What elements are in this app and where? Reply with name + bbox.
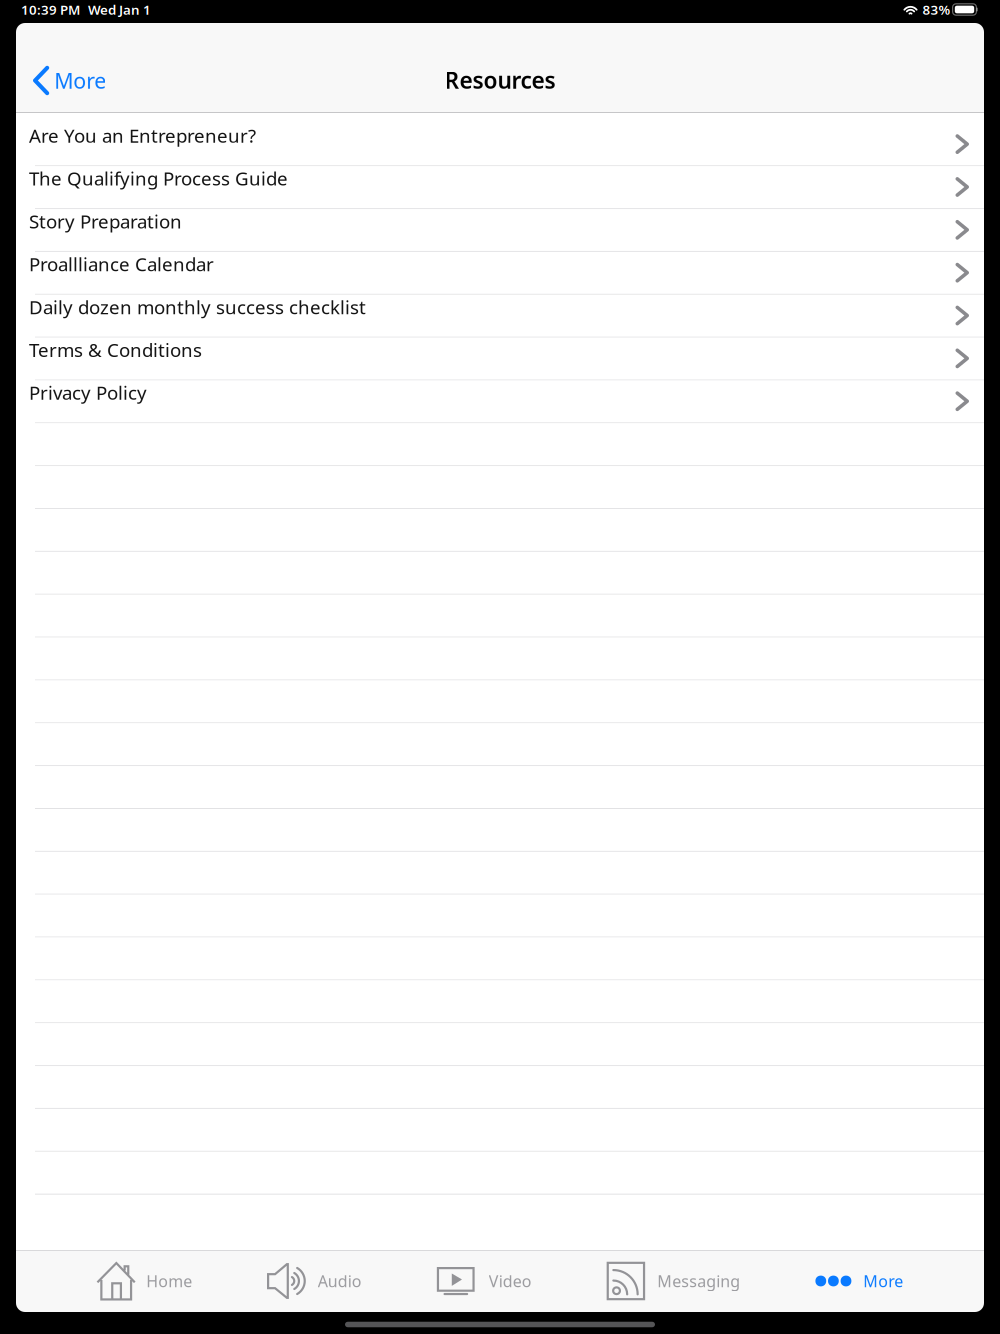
button[interactable]: Messaging	[607, 1251, 740, 1311]
staticText: More	[863, 1270, 903, 1292]
staticText: Home	[146, 1270, 192, 1292]
staticText: Privacy Policy	[29, 380, 147, 405]
staticText: Terms & Conditions	[29, 337, 202, 362]
staticText: More	[54, 66, 106, 95]
staticText: Video	[489, 1270, 532, 1292]
staticText: Proallliance Calendar	[29, 252, 214, 276]
staticText: Audio	[318, 1270, 362, 1292]
button[interactable]: The Qualifying Process Guide	[16, 166, 984, 209]
button[interactable]: Home	[97, 1251, 192, 1311]
button[interactable]: Story Preparation	[16, 209, 984, 252]
button[interactable]: Terms & Conditions	[16, 338, 984, 380]
button[interactable]: Daily dozen monthly success checklist	[16, 295, 984, 338]
staticText: Are You an Entrepreneur?	[29, 123, 256, 148]
staticText: The Qualifying Process Guide	[29, 166, 288, 191]
staticText: 83%	[923, 1, 951, 18]
button[interactable]: Proallliance Calendar	[16, 252, 984, 295]
staticText: Wed Jan 1	[88, 1, 151, 18]
button[interactable]: Are You an Entrepreneur?	[16, 123, 984, 166]
staticText: Story Preparation	[29, 209, 182, 234]
button[interactable]: Audio	[267, 1251, 362, 1311]
staticText: Daily dozen monthly success checklist	[29, 294, 366, 319]
staticText: 10:39 PM	[21, 1, 80, 18]
button[interactable]: More	[16, 56, 118, 105]
button[interactable]: More	[815, 1251, 903, 1311]
button[interactable]: Video	[437, 1251, 532, 1311]
staticText: Resources	[444, 65, 555, 95]
staticText: Messaging	[657, 1270, 740, 1292]
button[interactable]: Privacy Policy	[16, 380, 984, 423]
